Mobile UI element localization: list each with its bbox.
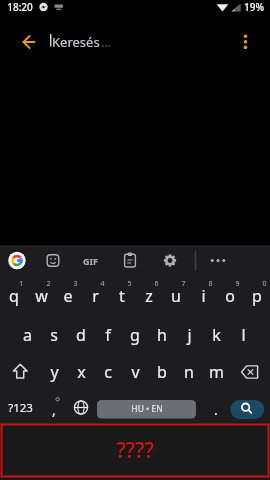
staticText: GIF [83, 255, 98, 267]
staticText: ?123 [8, 400, 33, 416]
staticText: 2 [46, 279, 51, 289]
staticText: , [52, 400, 56, 419]
staticText: x [77, 361, 86, 383]
staticText: 6 [154, 279, 159, 289]
staticText: o [225, 285, 235, 307]
staticText: n [184, 361, 194, 383]
staticText: q [9, 285, 19, 307]
staticText: 5 [127, 279, 132, 289]
staticText: ... [101, 34, 111, 50]
staticText: 8 [208, 279, 213, 289]
staticText: j [187, 324, 192, 346]
staticText: c [104, 361, 112, 383]
staticText: g [130, 324, 140, 346]
staticText: 3 [73, 279, 78, 289]
staticText: z [145, 285, 153, 307]
staticText: 18:20 [7, 0, 33, 14]
staticText: f [105, 324, 111, 346]
staticText: 9 [235, 279, 240, 289]
staticText: HU • EN [131, 403, 163, 415]
staticText: y [50, 361, 59, 383]
staticText: t [119, 285, 125, 307]
staticText: u [171, 285, 181, 307]
staticText: 4 [100, 279, 105, 289]
staticText: m [209, 361, 224, 383]
staticText: s [50, 324, 58, 346]
staticText: . [214, 400, 218, 419]
staticText: Keresés [52, 33, 100, 50]
staticText: h [157, 324, 167, 346]
staticText: i [201, 285, 206, 307]
staticText: v [131, 361, 140, 383]
staticText: l [241, 324, 246, 346]
staticText: p [252, 285, 262, 307]
staticText: d [76, 324, 86, 346]
staticText: e [63, 285, 73, 307]
staticText: 0 [262, 279, 267, 289]
staticText: k [212, 324, 221, 346]
staticText: 1 [19, 279, 24, 289]
staticText: ???? [116, 436, 154, 465]
staticText: w [35, 285, 48, 307]
staticText: 19% [244, 0, 264, 14]
staticText: b [157, 361, 167, 383]
staticText: r [92, 285, 99, 307]
staticText: 7 [181, 279, 186, 289]
staticText: a [23, 324, 32, 346]
